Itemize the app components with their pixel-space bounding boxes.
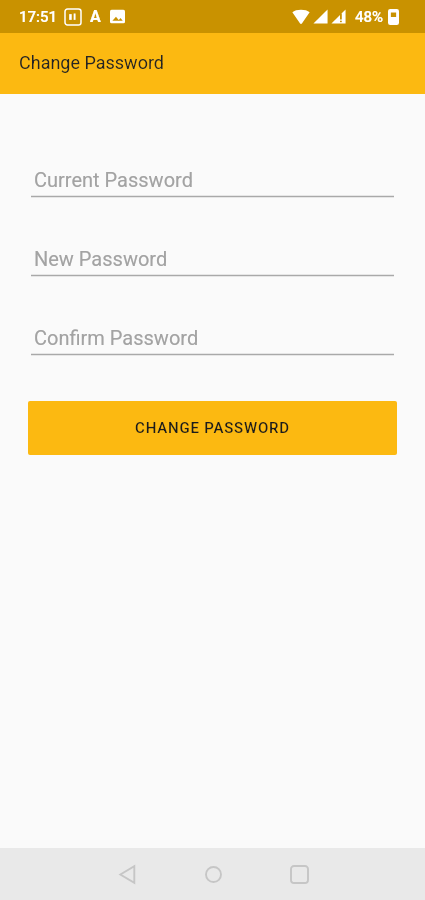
button[interactable]: CHANGE PASSWORD [28, 401, 397, 455]
staticText: Change Password [19, 52, 164, 73]
button[interactable]: New Password [31, 247, 394, 277]
button[interactable]: Confirm Password [31, 326, 394, 356]
button[interactable]: Home [187, 848, 239, 900]
staticText: CHANGE PASSWORD [135, 419, 290, 437]
button[interactable]: Recent apps [273, 848, 325, 900]
staticText: Confirm Password [34, 326, 199, 349]
staticText: 17:51 [19, 8, 58, 26]
button[interactable]: Current Password [31, 168, 394, 198]
staticText: 48% [355, 8, 384, 26]
staticText: New Password [34, 247, 168, 270]
button[interactable]: Back [101, 848, 153, 900]
staticText: Current Password [34, 168, 193, 191]
staticText: A [90, 7, 101, 26]
